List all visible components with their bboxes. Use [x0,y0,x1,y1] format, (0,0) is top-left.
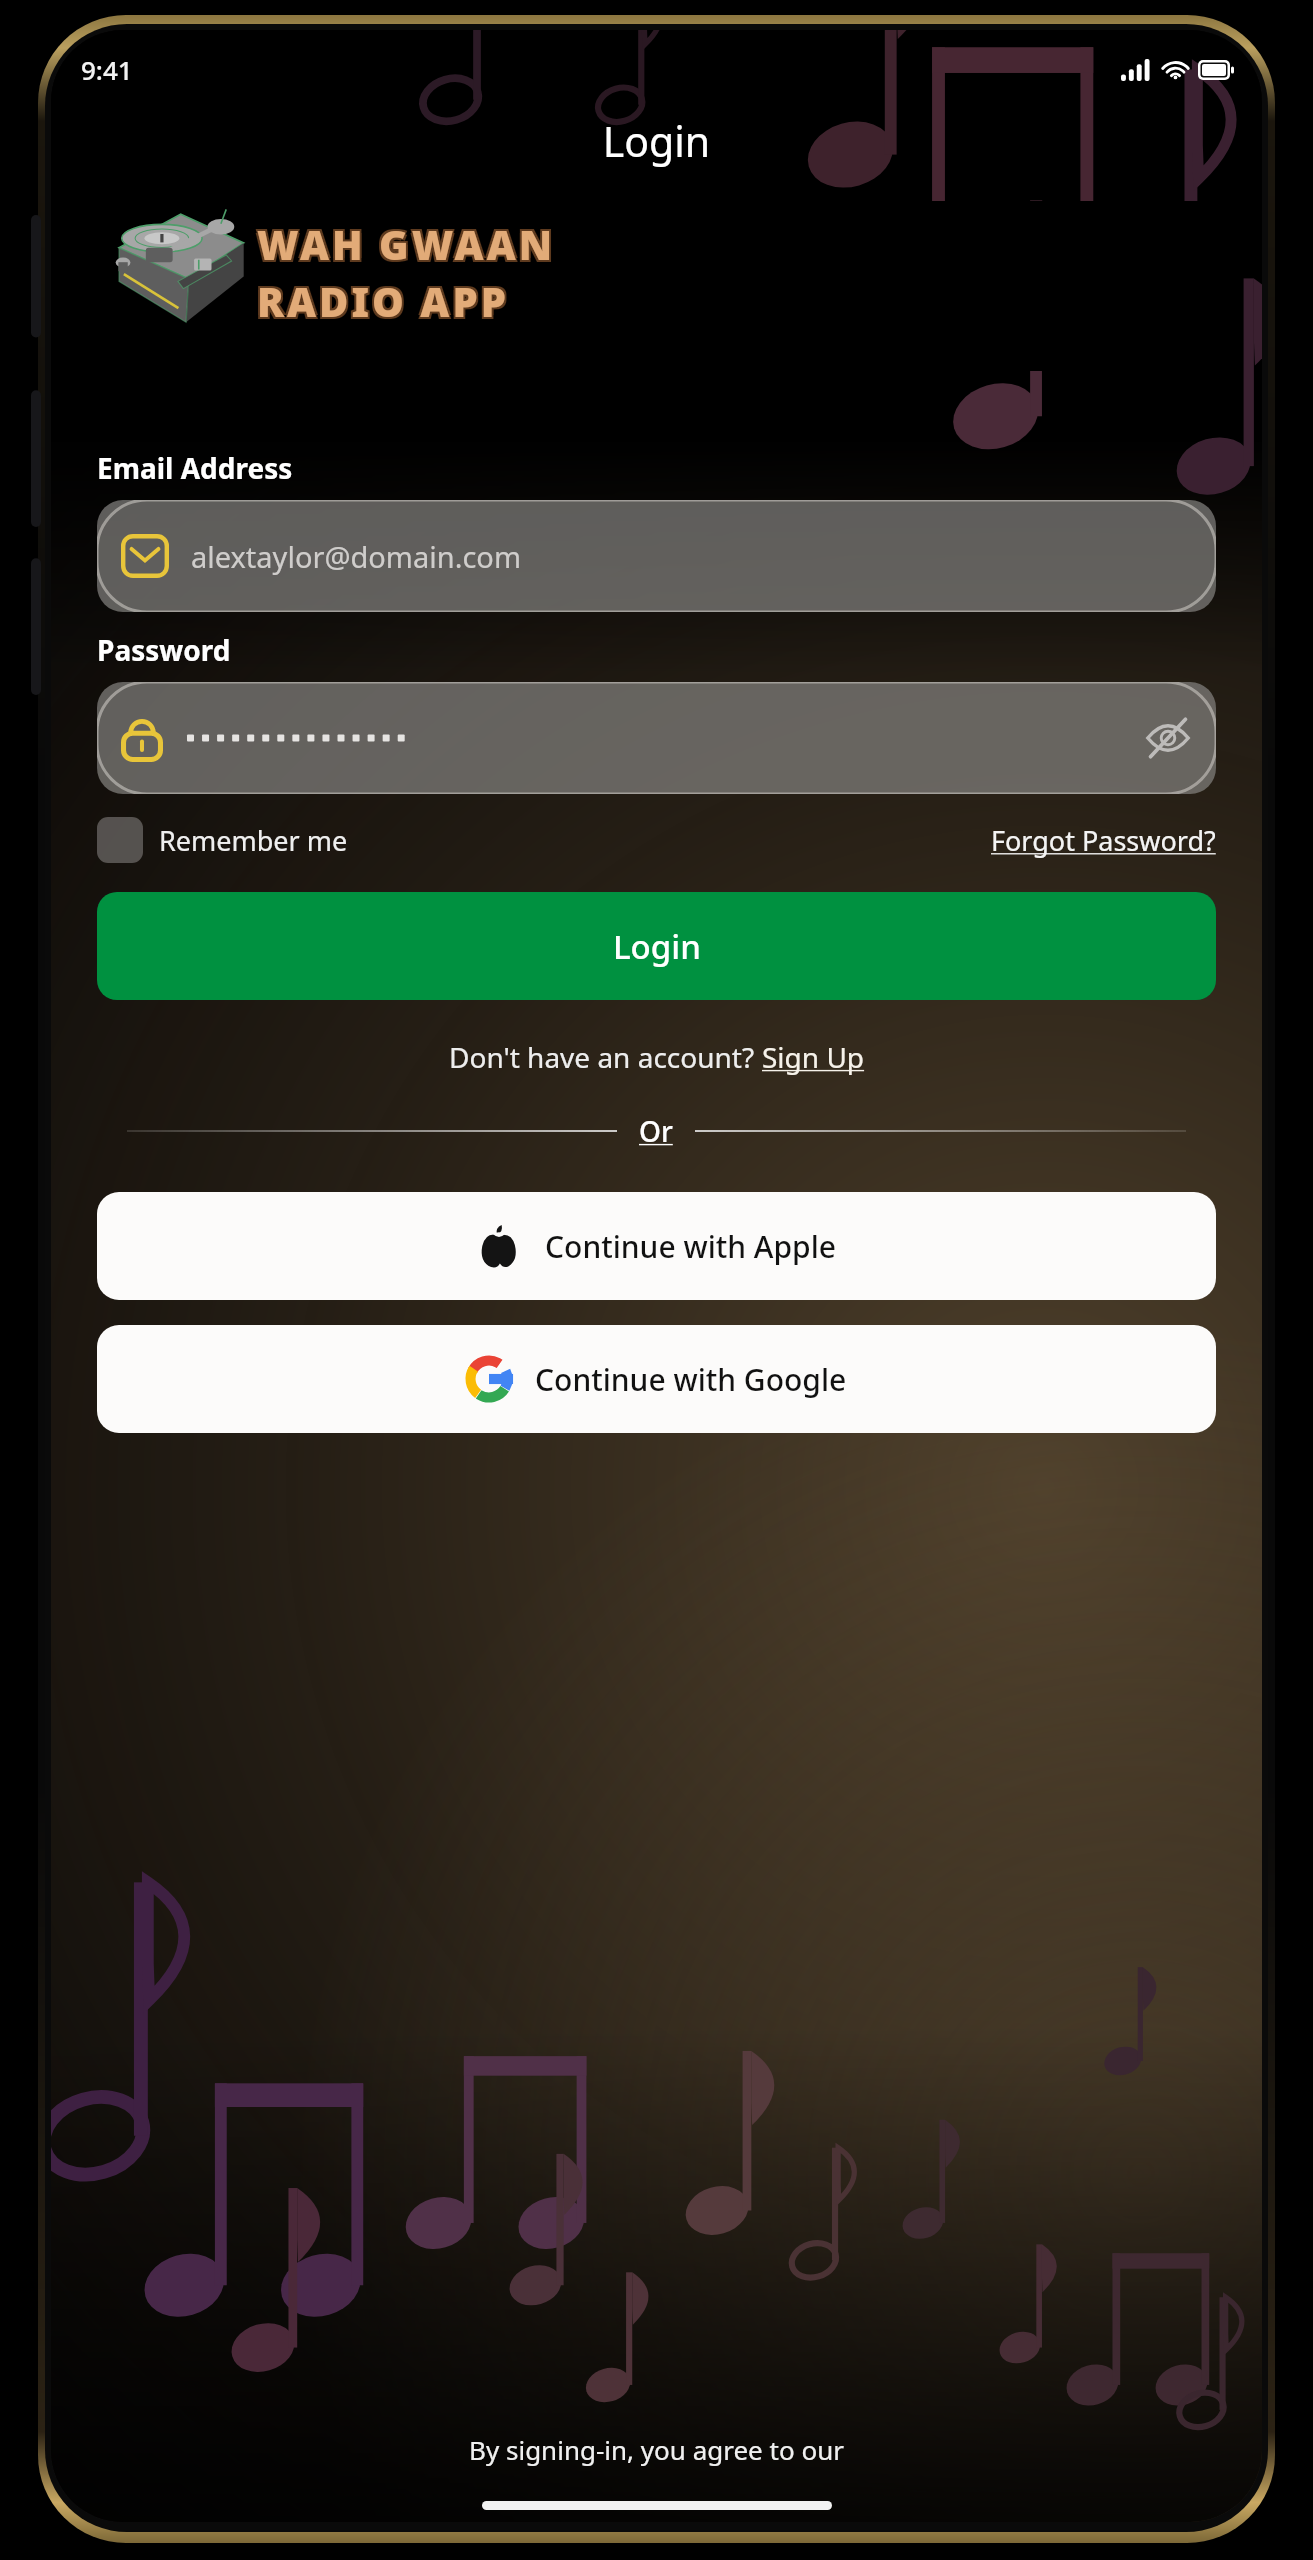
staticText: Password [97,631,231,669]
staticText: WAH GWAAN [259,219,558,273]
staticText: RADIO APP [255,276,507,330]
staticText: Forgot Password? [991,822,1216,859]
button[interactable]: alextaylor@domain.com [97,500,1216,612]
button[interactable]: Continue with Apple [97,1192,1216,1300]
button[interactable]: Login [97,892,1216,1000]
staticText: Continue with Apple [545,1226,836,1267]
staticText: WAH GWAAN [255,219,554,273]
staticText: Email Address [97,449,293,487]
staticText: RADIO APP [257,274,509,328]
staticText: Don't have an account? [449,1038,762,1076]
staticText: WAH GWAAN [259,215,558,269]
staticText: RADIO APP [255,272,507,326]
staticText: WAH GWAAN [257,217,556,271]
button[interactable]: Show password [1142,712,1194,764]
staticText: RADIO APP [259,276,511,330]
button[interactable]: Show password [97,682,1216,794]
button[interactable]: Remember me [97,817,348,863]
staticText: 9:41 [81,52,133,87]
staticText: Continue with Google [535,1359,847,1400]
staticText: WAH GWAAN [255,215,554,269]
staticText: By signing-in, you agree to our [51,2432,1262,2467]
staticText: alextaylor@domain.com [191,537,521,576]
staticText: Or [639,1112,673,1150]
staticText: Login [613,924,701,969]
button[interactable]: Sign Up [762,1038,865,1076]
button[interactable]: Forgot Password? [991,822,1216,859]
staticText: Sign Up [762,1038,865,1076]
button[interactable]: Continue with Google [97,1325,1216,1433]
staticText: Login [51,113,1262,169]
staticText: RADIO APP [259,272,511,326]
staticText: Remember me [159,822,348,859]
